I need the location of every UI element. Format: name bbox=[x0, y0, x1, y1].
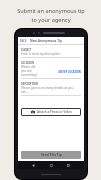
staticText: Submit an anonymous tip bbox=[17, 7, 85, 15]
staticText: LOCATION bbox=[21, 61, 34, 64]
button[interactable]: Home bbox=[50, 164, 53, 167]
staticText: Attach a Photo or Video bbox=[37, 110, 72, 114]
other: Camera bbox=[31, 110, 35, 114]
staticText: to your agency bbox=[31, 16, 71, 24]
staticText: SUBJECT bbox=[21, 48, 32, 51]
staticText: BACK bbox=[20, 39, 27, 43]
staticText: Send This Tip bbox=[41, 153, 62, 157]
staticText: Please give us as many details as you ca… bbox=[21, 86, 81, 94]
button[interactable]: Back bbox=[32, 164, 35, 167]
button[interactable]: Camera bbox=[21, 108, 81, 116]
button[interactable]: Recent apps bbox=[67, 164, 70, 167]
staticText: Where did you see something? bbox=[21, 65, 39, 77]
staticText: Enter a short tip description bbox=[21, 52, 61, 56]
button[interactable]: DESCRIPTION bbox=[18, 82, 84, 96]
button[interactable]: BACK bbox=[18, 37, 84, 44]
button[interactable]: SUBJECT bbox=[18, 48, 84, 58]
staticText: USE MY LOCATION bbox=[58, 70, 81, 73]
button[interactable]: Send This Tip bbox=[21, 151, 81, 159]
button[interactable]: LOCATION bbox=[18, 61, 84, 79]
staticText: DESCRIPTION bbox=[21, 82, 38, 85]
staticText: New Anonymous Tip bbox=[30, 39, 62, 43]
